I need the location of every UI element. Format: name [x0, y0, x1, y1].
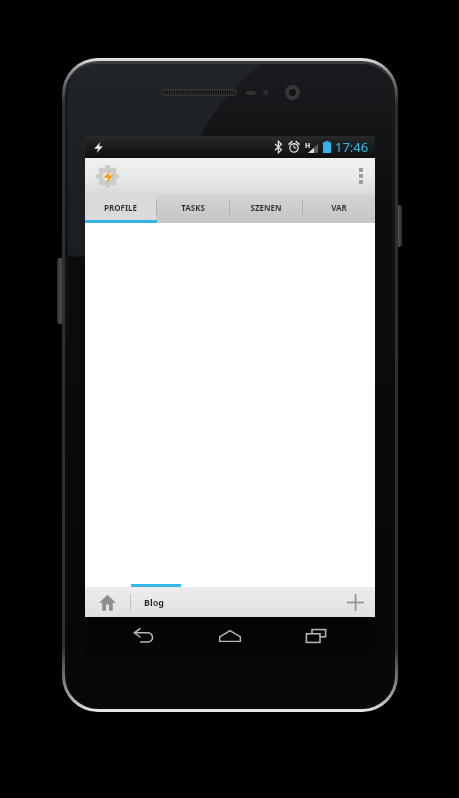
staticText: H	[305, 141, 311, 151]
button[interactable]: Blog	[131, 587, 335, 617]
button[interactable]: App icon	[90, 159, 124, 193]
staticText: TASKS	[181, 202, 205, 213]
button[interactable]: Add	[335, 587, 375, 617]
staticText: PROFILE	[104, 202, 137, 213]
button[interactable]: Recent apps	[289, 617, 343, 654]
button[interactable]: VAR	[303, 194, 375, 220]
button[interactable]: TASKS	[157, 194, 229, 220]
staticText: VAR	[331, 202, 347, 213]
button[interactable]: More options	[347, 158, 375, 194]
button[interactable]: Home	[85, 587, 130, 617]
staticText: SZENEN	[250, 202, 282, 213]
button[interactable]: Home	[203, 617, 257, 654]
button[interactable]: PROFILE	[85, 194, 156, 220]
button[interactable]: SZENEN	[230, 194, 302, 220]
button[interactable]: Back	[117, 617, 171, 654]
staticText: Blog	[144, 596, 164, 608]
staticText: 17:46	[335, 138, 369, 156]
